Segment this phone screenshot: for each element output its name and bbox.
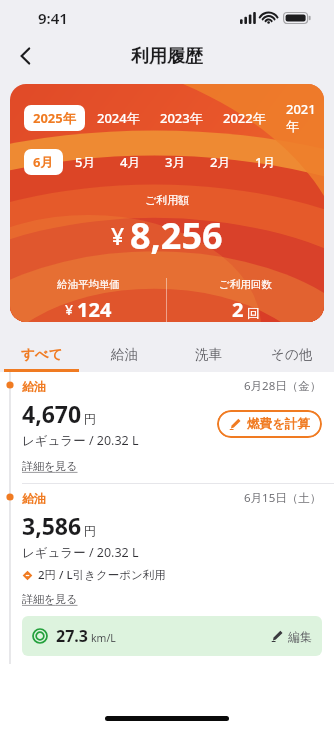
staticText: 利用履歴 [131, 45, 203, 68]
staticText: 1月 [255, 153, 276, 171]
staticText: 洗車 [195, 346, 222, 363]
staticText: 4,670 [22, 398, 82, 429]
staticText: 2025年 [33, 109, 76, 127]
button[interactable]: 27.3 [22, 616, 322, 656]
staticText: 9:41 [38, 8, 68, 28]
staticText: 編集 [288, 629, 312, 644]
staticText: 燃費を計算 [247, 416, 310, 432]
staticText: 2023年 [160, 109, 203, 127]
button[interactable]: 給油 [83, 336, 166, 372]
staticText: 2024年 [97, 109, 140, 127]
staticText: 2 [232, 296, 244, 322]
staticText: 27.3 [56, 625, 88, 647]
button[interactable]: 戻る [6, 36, 46, 76]
button[interactable]: 2023年 [158, 105, 205, 131]
staticText: 6月15日（土） [244, 490, 322, 506]
staticText: すべて [21, 346, 63, 363]
button[interactable]: 詳細を見る [22, 459, 78, 473]
staticText: 4月 [120, 153, 141, 171]
button[interactable]: 給油 [0, 484, 334, 666]
staticText: 給油 [111, 346, 138, 363]
staticText: 円 [84, 523, 96, 538]
button[interactable]: 2025年 [24, 105, 85, 131]
button[interactable]: 詳細を見る [22, 592, 78, 606]
button[interactable]: 4月 [118, 149, 143, 175]
staticText: 2円 / L引きクーポン利用 [38, 567, 166, 583]
button[interactable]: その他 [250, 336, 334, 372]
staticText: 回 [247, 305, 260, 321]
staticText: 6月 [33, 153, 54, 171]
button[interactable]: 1月 [253, 149, 278, 175]
staticText: 5月 [75, 153, 96, 171]
staticText: 円 [84, 411, 96, 426]
button[interactable]: 洗車 [166, 336, 250, 372]
button[interactable]: 給油 [0, 372, 334, 483]
button[interactable]: 6月 [24, 149, 63, 175]
staticText: レギュラー / 20.32 L [22, 432, 139, 449]
button[interactable]: 燃費を計算 [217, 410, 322, 438]
staticText: 給油 [22, 491, 46, 506]
button[interactable]: 2024年 [95, 105, 142, 131]
button[interactable]: 3月 [163, 149, 188, 175]
staticText: 給油平均単価 [57, 278, 120, 291]
staticText: その他 [271, 346, 313, 363]
button[interactable]: 5月 [73, 149, 98, 175]
staticText: 8,256 [130, 211, 223, 260]
staticText: レギュラー / 20.32 L [22, 544, 139, 561]
button[interactable]: 2021年 [284, 96, 324, 139]
button[interactable]: 2月 [208, 149, 233, 175]
staticText: 2021年 [286, 100, 322, 135]
staticText: km/L [91, 631, 116, 645]
staticText: 2月 [210, 153, 231, 171]
staticText: 3,586 [22, 510, 82, 541]
staticText: ご利用額 [145, 193, 190, 207]
button[interactable]: すべて [0, 336, 83, 372]
staticText: 給油 [22, 379, 46, 394]
staticText: 6月28日（金） [244, 378, 322, 394]
staticText: ¥ [111, 220, 125, 251]
button[interactable]: 2022年 [221, 105, 268, 131]
staticText: 3月 [165, 153, 186, 171]
staticText: 124 [77, 296, 112, 322]
staticText: ご利用回数 [219, 278, 272, 291]
staticText: ¥ [65, 300, 74, 319]
staticText: 2022年 [223, 109, 266, 127]
